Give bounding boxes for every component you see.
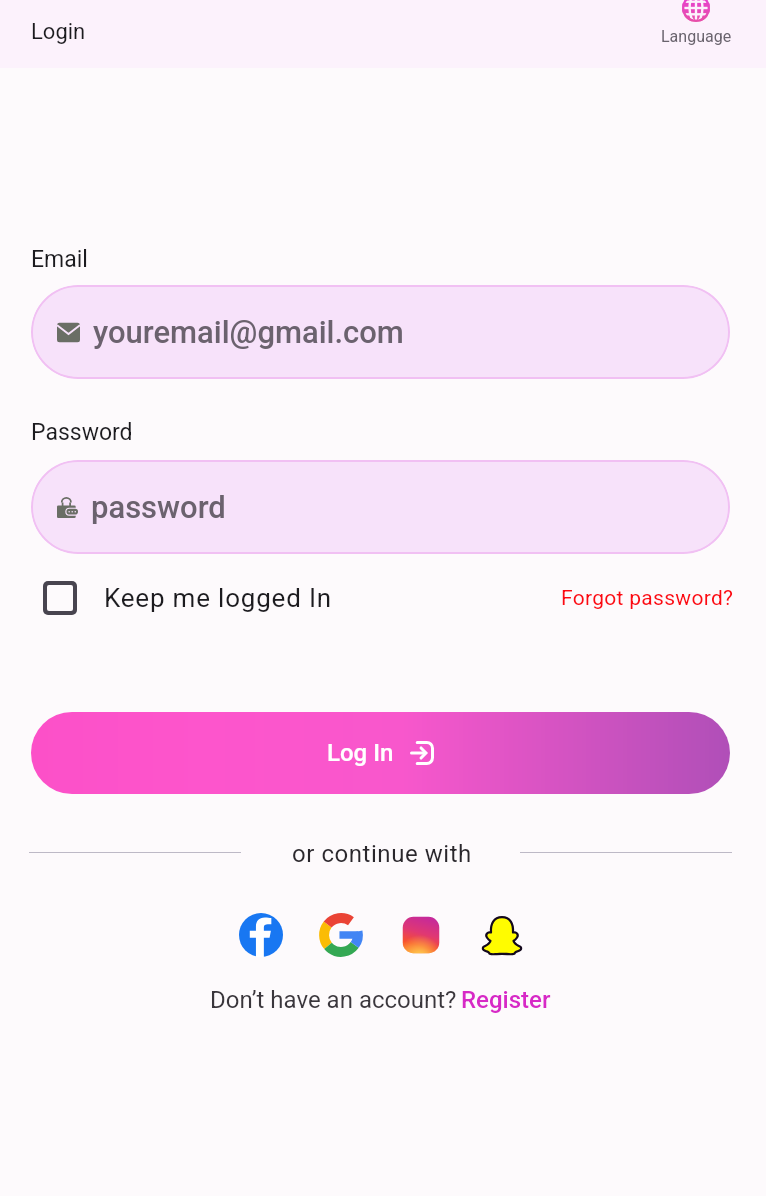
staticText: Don’t have an account? xyxy=(210,986,457,1014)
staticText: password xyxy=(91,489,226,525)
button[interactable]: youremail@gmail.com xyxy=(31,285,730,379)
button[interactable]: Sign in with Google xyxy=(319,913,363,957)
staticText: Password xyxy=(31,419,133,446)
button[interactable]: Forgot password? xyxy=(561,586,734,611)
button[interactable]: Keep me logged In xyxy=(43,581,332,615)
staticText: Language xyxy=(661,27,732,46)
staticText: Log In xyxy=(327,739,394,767)
staticText: Email xyxy=(31,246,88,273)
button[interactable]: Sign in with Snapchat xyxy=(480,913,524,957)
staticText: Login xyxy=(31,19,86,45)
staticText: or continue with xyxy=(292,840,472,868)
staticText: youremail@gmail.com xyxy=(93,314,404,350)
button[interactable]: Register xyxy=(461,986,551,1014)
button[interactable]: Log In xyxy=(31,712,730,794)
button[interactable]: Language xyxy=(660,0,732,46)
staticText: Keep me logged In xyxy=(104,583,332,613)
button[interactable]: Sign in with Facebook xyxy=(239,913,283,957)
button[interactable]: Sign in with Instagram xyxy=(399,913,443,957)
button[interactable]: password xyxy=(31,460,730,554)
